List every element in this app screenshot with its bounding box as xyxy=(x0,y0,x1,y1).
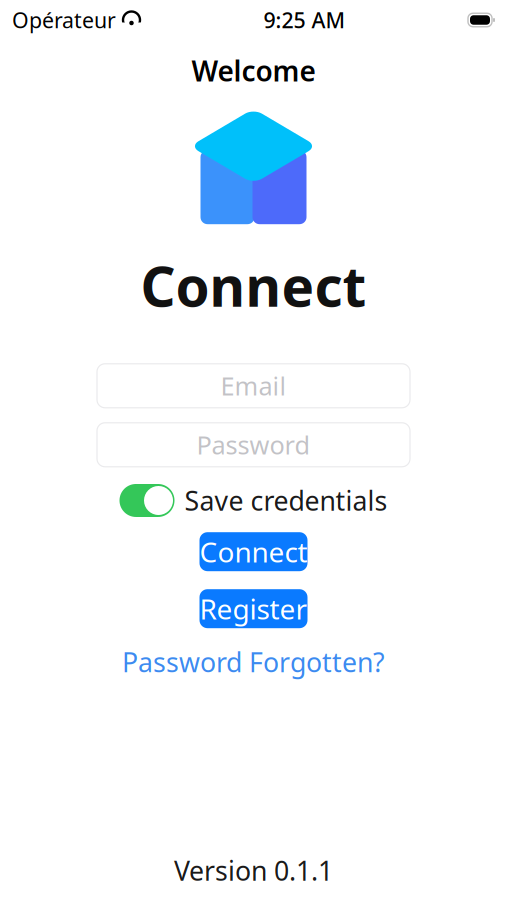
staticText: Welcome xyxy=(191,52,315,89)
staticText: Connect xyxy=(140,249,366,322)
staticText: Password Forgotten? xyxy=(122,644,385,680)
button[interactable]: Connect xyxy=(199,532,307,571)
staticText: Version 0.1.1 xyxy=(174,853,333,888)
staticText: Email xyxy=(220,369,286,403)
staticText: Opérateur xyxy=(12,6,116,34)
button[interactable]: Register xyxy=(199,589,307,628)
staticText: 9:25 AM xyxy=(263,6,345,34)
staticText: Connect xyxy=(199,533,307,570)
staticText: Save credentials xyxy=(184,483,387,518)
button[interactable]: Save credentials xyxy=(119,483,387,518)
staticText: Password xyxy=(196,428,310,462)
staticText: Register xyxy=(199,590,307,627)
button[interactable]: Password Forgotten? xyxy=(114,640,393,684)
